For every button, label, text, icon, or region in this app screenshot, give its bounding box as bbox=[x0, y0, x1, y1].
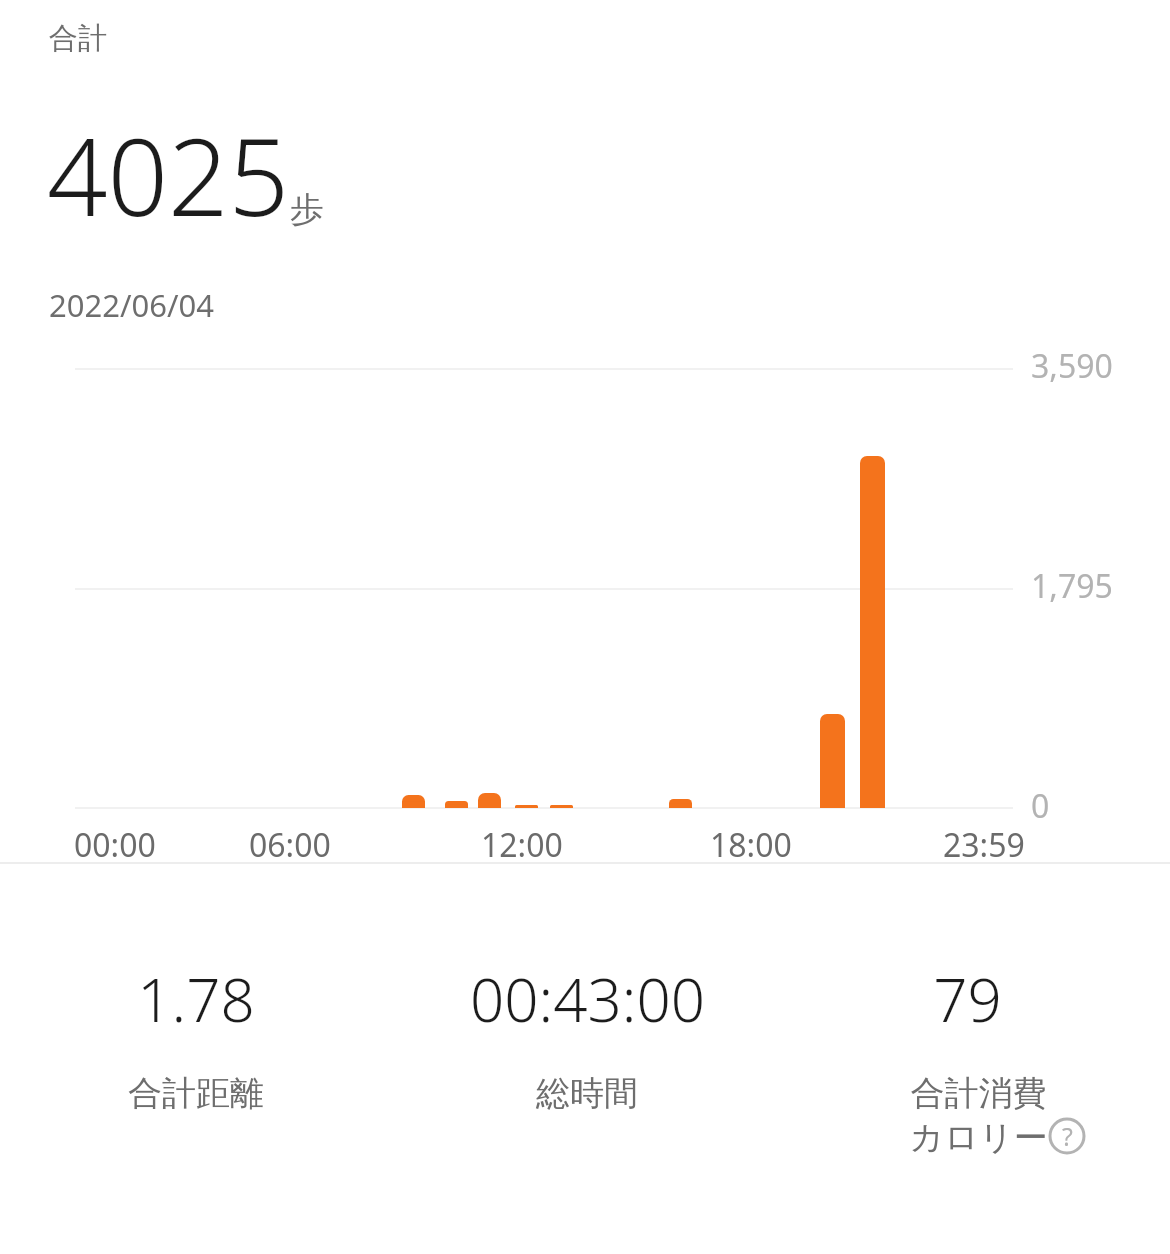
staticText: 12:00 bbox=[481, 823, 563, 867]
staticText: 23:59 bbox=[943, 823, 1025, 867]
button[interactable]: ヘルプ bbox=[1048, 1117, 1086, 1155]
staticText: 合計距離 bbox=[128, 1072, 264, 1115]
staticText: 歩 bbox=[290, 188, 324, 231]
staticText: 合計消費 カロリー bbox=[909, 1072, 1048, 1159]
staticText: 総時間 bbox=[536, 1072, 638, 1115]
staticText: 79 bbox=[933, 958, 1002, 1040]
staticText: 0 bbox=[1031, 784, 1050, 828]
staticText: 合計 bbox=[49, 20, 107, 57]
staticText: 1,795 bbox=[1031, 564, 1113, 608]
staticText: 18:00 bbox=[710, 823, 792, 867]
staticText: 1.78 bbox=[137, 958, 255, 1040]
staticText: 00:43:00 bbox=[470, 958, 705, 1040]
button[interactable]: 1.78 bbox=[0, 958, 406, 1115]
button[interactable]: 79 bbox=[767, 958, 1170, 1159]
button[interactable]: 00:43:00 bbox=[377, 958, 797, 1115]
staticText: 06:00 bbox=[249, 823, 331, 867]
staticText: 2022/06/04 bbox=[49, 284, 214, 326]
staticText: ? bbox=[1062, 1119, 1073, 1153]
staticText: 00:00 bbox=[74, 823, 156, 867]
staticText: 3,590 bbox=[1031, 344, 1113, 388]
staticText: 4025 bbox=[47, 103, 290, 247]
